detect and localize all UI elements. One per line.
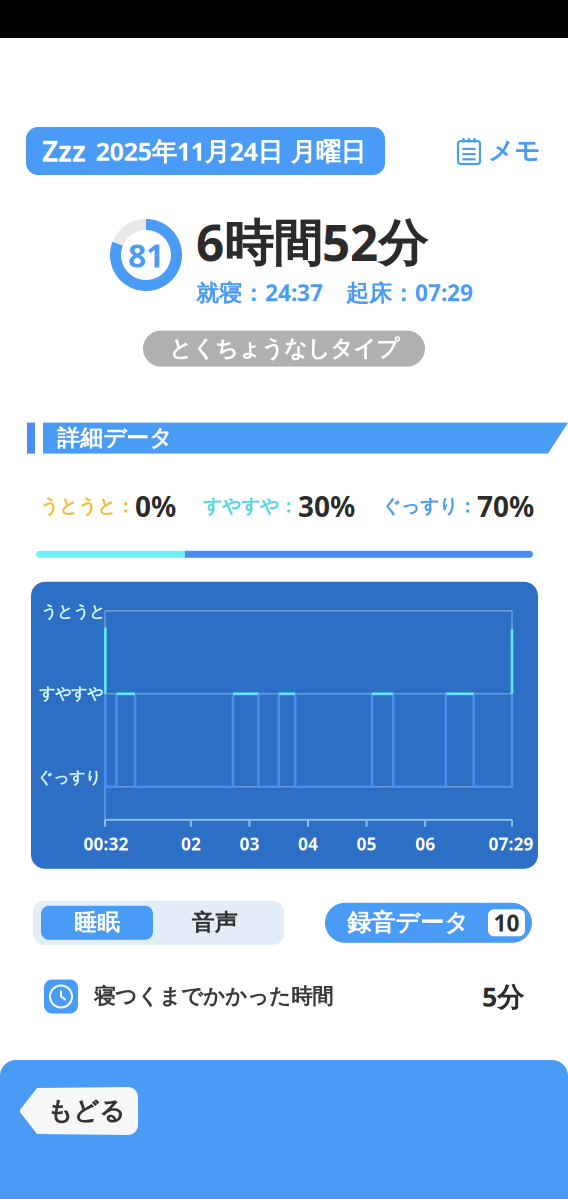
staticText: メモ [488,135,540,166]
staticText: 70% [477,488,534,525]
staticText: 寝つくまでかかった時間 [94,983,333,1010]
button[interactable]: 睡眠 [41,906,153,940]
staticText: すやすや： [203,495,298,518]
staticText: 06 [415,832,435,855]
staticText: Zzz [42,132,86,170]
button[interactable]: もどる [20,1087,138,1135]
staticText: 0% [135,488,176,525]
staticText: ぐっすり： [382,495,477,518]
staticText: もどる [47,1095,125,1126]
staticText: 就寝：24:37 起床：07:29 [196,277,473,308]
staticText: ぐっすり [37,768,101,788]
button[interactable]: 音声 [153,906,276,940]
staticText: 10 [493,908,519,938]
button[interactable]: Zzz [26,127,385,175]
staticText: すやすや [39,684,103,704]
staticText: うとうと [41,602,105,622]
staticText: うとうと： [40,495,135,518]
staticText: 睡眠 [74,909,120,937]
button[interactable]: メモ [458,135,540,166]
staticText: 録音データ [347,908,469,938]
staticText: 00:32 [83,832,128,855]
staticText: 07:29 [488,832,533,855]
staticText: 30% [298,488,355,525]
staticText: 音声 [191,909,237,937]
staticText: 2025年11月24日 月曜日 [95,134,365,168]
staticText: 81 [128,234,164,276]
staticText: 6時間52分 [196,209,427,274]
button[interactable]: 録音データ [325,903,532,943]
staticText: 5分 [482,979,524,1014]
staticText: 02 [181,832,201,855]
staticText: 03 [239,832,259,855]
staticText: 詳細データ [57,424,172,452]
staticText: 04 [298,832,318,855]
staticText: とくちょうなしタイプ [169,335,399,362]
staticText: 05 [357,832,377,855]
